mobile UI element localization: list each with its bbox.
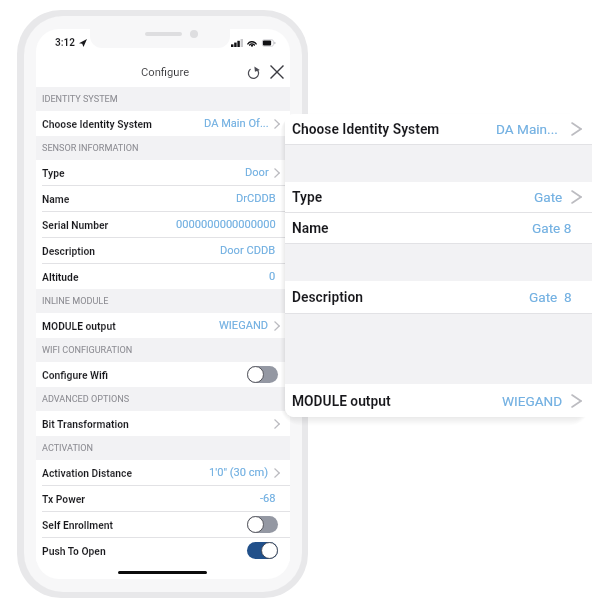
staticText: Tx Power — [42, 493, 86, 505]
button[interactable]: Type — [285, 182, 592, 213]
button[interactable]: Name — [285, 213, 592, 244]
button[interactable]: MODULE output — [36, 313, 290, 338]
button[interactable]: Choose Identity System — [36, 111, 290, 136]
button[interactable]: Close — [266, 61, 288, 83]
staticText: Choose Identity System — [42, 118, 152, 130]
staticText: MODULE output — [292, 393, 391, 409]
staticText: Self Enrollment — [42, 519, 114, 531]
staticText: Door — [245, 166, 269, 179]
button[interactable]: Push To Open — [36, 538, 290, 563]
staticText: DA Main... — [496, 121, 558, 137]
button[interactable]: Tx Power — [36, 486, 290, 512]
staticText: ADVANCED OPTIONS — [42, 394, 130, 405]
staticText: Name — [42, 193, 70, 205]
staticText: ACTIVATION — [42, 443, 94, 454]
button[interactable]: Refresh — [242, 61, 264, 83]
button[interactable]: Choose Identity System — [285, 114, 592, 145]
staticText: 0000000000000000 — [176, 218, 276, 231]
staticText: Description — [292, 289, 364, 305]
staticText: Bit Transformation — [42, 418, 129, 430]
staticText: Gate — [534, 189, 563, 205]
staticText: INLINE MODULE — [42, 296, 109, 307]
staticText: Configure Wifi — [42, 369, 109, 381]
button[interactable]: Configure Wifi — [36, 362, 290, 387]
staticText: MODULE output — [42, 320, 116, 332]
staticText: Type — [292, 189, 323, 205]
button[interactable]: Type — [36, 160, 290, 186]
staticText: IDENTITY SYSTEM — [42, 94, 118, 105]
staticText: WIEGAND — [502, 393, 563, 409]
staticText: Description — [42, 245, 96, 257]
staticText: Gate 8 — [532, 220, 572, 236]
button[interactable]: Activation Distance — [36, 460, 290, 486]
staticText: -68 — [260, 492, 276, 505]
button[interactable]: Description — [36, 238, 290, 264]
staticText: 0 — [269, 270, 276, 283]
button[interactable] — [247, 542, 278, 559]
button[interactable] — [247, 366, 278, 383]
staticText: Activation Distance — [42, 467, 132, 479]
staticText: Configure — [141, 66, 190, 79]
staticText: SENSOR INFORMATION — [42, 143, 139, 154]
staticText: Altitude — [42, 271, 79, 283]
staticText: Serial Number — [42, 219, 109, 231]
staticText: 3:12 — [55, 37, 76, 49]
button[interactable]: Description — [285, 281, 592, 314]
staticText: Choose Identity System — [292, 121, 440, 137]
button[interactable]: MODULE output — [285, 384, 592, 417]
button[interactable]: Self Enrollment — [36, 512, 290, 538]
staticText: Gate 8 — [529, 289, 572, 305]
staticText: DA Main Of... — [204, 117, 269, 130]
button[interactable]: Bit Transformation — [36, 411, 290, 436]
staticText: Name — [292, 220, 329, 236]
staticText: WIFI CONFIGURATION — [42, 345, 133, 356]
staticText: Type — [42, 167, 65, 179]
button[interactable]: Serial Number — [36, 212, 290, 238]
staticText: Door CDDB — [220, 244, 276, 257]
staticText: 1'0" (30 cm) — [209, 466, 269, 479]
button[interactable]: Name — [36, 186, 290, 212]
staticText: DrCDDB — [236, 192, 276, 205]
staticText: WIEGAND — [219, 319, 269, 332]
button[interactable]: Altitude — [36, 264, 290, 289]
staticText: Push To Open — [42, 545, 106, 557]
button[interactable] — [247, 516, 278, 533]
